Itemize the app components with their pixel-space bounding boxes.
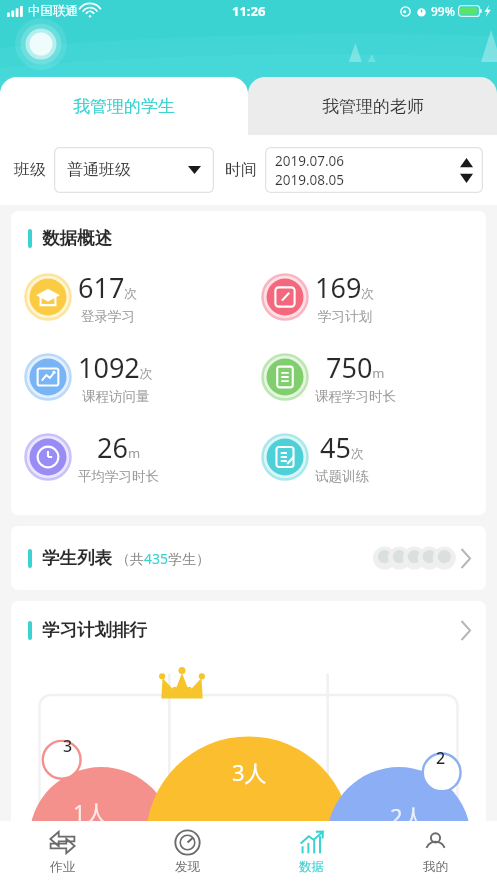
staticText: 登录学习 [81,308,135,325]
staticText: 11:26 [232,2,266,20]
staticText: 中国联通 [28,3,78,19]
staticText: 2人 [390,801,425,831]
staticText: 课程学习时长 [315,388,396,405]
staticText: 学习计划排行 [42,619,147,641]
staticText: 平均学习时长 [78,468,159,485]
staticText: 时间 [225,160,257,180]
staticText: 试题训练 [315,468,369,485]
button[interactable]: 学习计划排行 [11,601,486,659]
staticText: 26m [97,429,141,466]
staticText: 我管理的学生 [73,96,175,117]
staticText: 3 [63,735,73,757]
staticText: 课程访问量 [82,388,150,405]
button[interactable]: 2019.07.06 [265,147,483,193]
staticText: 2019.07.06 [275,152,345,170]
staticText: 作业 [50,859,75,875]
staticText: 1人 [73,797,108,827]
staticText: 1092次 [78,349,153,386]
staticText: （共435学生） [116,549,211,568]
button[interactable]: 数据 [249,821,373,883]
staticText: 普通班级 [67,160,131,180]
staticText: 45次 [320,429,364,466]
staticText: 班级 [14,160,46,180]
staticText: 数据 [299,859,324,875]
staticText: 2019.08.05 [275,171,345,189]
staticText: 3人 [232,757,267,787]
button[interactable]: 我管理的学生 [0,77,248,135]
button[interactable]: 作业 [0,821,125,883]
button[interactable]: 我的 [373,821,497,883]
staticText: 我管理的老师 [322,96,424,117]
staticText: 学生列表 [42,547,112,569]
staticText: 学习计划 [318,308,372,325]
staticText: 数据概述 [42,227,112,249]
button[interactable]: 普通班级 [54,147,214,193]
staticText: 我的 [423,859,448,875]
button[interactable]: 学生列表 [11,526,486,590]
staticText: 99% [431,3,455,19]
staticText: 发现 [175,859,200,875]
staticText: 169次 [315,269,375,306]
staticText: 617次 [78,269,138,306]
staticText: 2 [436,747,446,769]
button[interactable]: 我管理的老师 [248,77,497,135]
staticText: 750m [326,349,385,386]
button[interactable]: 发现 [125,821,249,883]
